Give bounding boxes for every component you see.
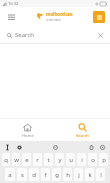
staticText: p (102, 156, 106, 164)
button[interactable]: w (12, 153, 20, 166)
button[interactable]: f (41, 168, 50, 181)
staticText: h (66, 171, 70, 179)
button[interactable]: Search (55, 119, 110, 141)
staticText: f (44, 171, 47, 179)
staticText: r (36, 156, 39, 164)
button[interactable]: s (17, 168, 27, 181)
staticText: e (25, 156, 29, 164)
staticText: s (21, 171, 24, 179)
staticText: u (69, 156, 73, 164)
button[interactable]: Cursor (3, 143, 12, 152)
button[interactable]: j (74, 168, 83, 181)
button[interactable]: g (52, 168, 61, 181)
staticText: Search (76, 133, 89, 138)
staticText: l (100, 171, 102, 179)
staticText: melhordoze (46, 11, 73, 17)
button[interactable]: More (98, 143, 107, 152)
button[interactable]: k (85, 168, 94, 181)
button[interactable]: r (33, 153, 42, 166)
button[interactable]: l (96, 168, 105, 181)
button[interactable]: Clear (95, 30, 105, 40)
button[interactable]: Emoji (51, 143, 60, 152)
button[interactable]: e (22, 153, 31, 166)
button[interactable]: Search (15, 31, 95, 39)
staticText: d (32, 171, 36, 179)
button[interactable]: a (5, 168, 15, 181)
button[interactable]: t (44, 153, 53, 166)
button[interactable]: y (55, 153, 64, 166)
button[interactable]: Clipboard (87, 143, 96, 152)
button[interactable]: u (66, 153, 75, 166)
staticText: j (78, 171, 80, 179)
staticText: i (81, 156, 83, 164)
button[interactable]: q (2, 153, 10, 166)
staticText: a (8, 171, 12, 179)
staticText: monitor (46, 17, 62, 22)
button[interactable]: h (63, 168, 72, 181)
staticText: Search (15, 31, 34, 39)
button[interactable]: Settings (15, 143, 24, 152)
staticText: o (91, 156, 95, 164)
button[interactable]: o (88, 153, 97, 166)
staticText: k (88, 171, 92, 179)
staticText: w (14, 156, 19, 164)
button[interactable]: i (77, 153, 86, 166)
button[interactable]: melhordoze (36, 11, 73, 22)
button[interactable]: Home (0, 119, 55, 141)
button[interactable]: d (29, 168, 39, 181)
staticText: y (58, 156, 62, 164)
button[interactable]: Account (93, 11, 105, 23)
button[interactable]: p (99, 153, 108, 166)
button[interactable]: Menu (5, 11, 17, 23)
staticText: g (55, 171, 59, 179)
staticText: Home (22, 133, 34, 138)
staticText: q (4, 156, 8, 164)
staticText: t (47, 156, 50, 164)
staticText: 10:32 (8, 1, 19, 6)
